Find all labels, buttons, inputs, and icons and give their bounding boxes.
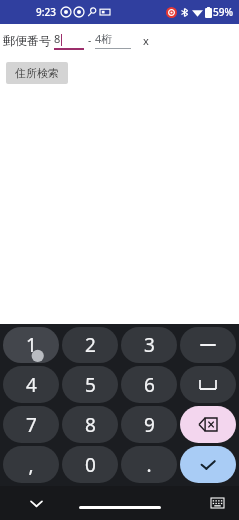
button[interactable]: Clear bbox=[137, 29, 155, 51]
staticText: 8 bbox=[85, 412, 96, 438]
staticText: 3 bbox=[144, 332, 155, 358]
staticText: 9 bbox=[144, 412, 155, 438]
button[interactable]: 6 bbox=[121, 366, 177, 403]
button[interactable]: 3 bbox=[121, 327, 177, 363]
button[interactable]: 4 bbox=[3, 366, 59, 403]
staticText: 郵便番号 bbox=[3, 33, 51, 48]
staticText: 6 bbox=[144, 372, 155, 398]
button[interactable]: . bbox=[121, 446, 177, 483]
staticText: - bbox=[88, 33, 92, 47]
staticText: x bbox=[143, 33, 149, 48]
button[interactable]: Backspace bbox=[180, 406, 236, 443]
button[interactable]: 0 bbox=[62, 446, 118, 483]
button[interactable]: Hide keyboard bbox=[26, 493, 46, 513]
button[interactable]: 5 bbox=[62, 366, 118, 403]
staticText: 5 bbox=[85, 372, 96, 398]
staticText: 4桁 bbox=[95, 31, 113, 46]
button[interactable]: 7 bbox=[3, 406, 59, 443]
staticText: 4 bbox=[26, 372, 37, 398]
staticText: 住所検索 bbox=[15, 66, 59, 80]
staticText: 1 bbox=[26, 332, 37, 358]
button[interactable]: 1 bbox=[3, 327, 59, 363]
button[interactable]: 8 bbox=[62, 406, 118, 443]
button[interactable]: Switch keyboard bbox=[207, 493, 227, 513]
staticText: 9:23 bbox=[36, 5, 56, 19]
staticText: . bbox=[146, 452, 152, 478]
button[interactable]: , bbox=[3, 446, 59, 483]
button[interactable]: 4桁 bbox=[95, 31, 131, 49]
button[interactable]: Space bbox=[180, 366, 236, 403]
staticText: 8 bbox=[54, 31, 61, 46]
button[interactable]: Enter bbox=[180, 446, 236, 483]
staticText: 7 bbox=[26, 412, 37, 438]
button[interactable]: Dash bbox=[180, 327, 236, 363]
staticText: 59% bbox=[213, 5, 233, 19]
button[interactable]: 住所検索 bbox=[6, 62, 68, 84]
button[interactable]: 9 bbox=[121, 406, 177, 443]
staticText: 0 bbox=[85, 452, 96, 478]
button[interactable]: 2 bbox=[62, 327, 118, 363]
staticText: , bbox=[28, 452, 34, 478]
button[interactable]: 8 bbox=[54, 31, 84, 50]
staticText: 2 bbox=[85, 332, 96, 358]
